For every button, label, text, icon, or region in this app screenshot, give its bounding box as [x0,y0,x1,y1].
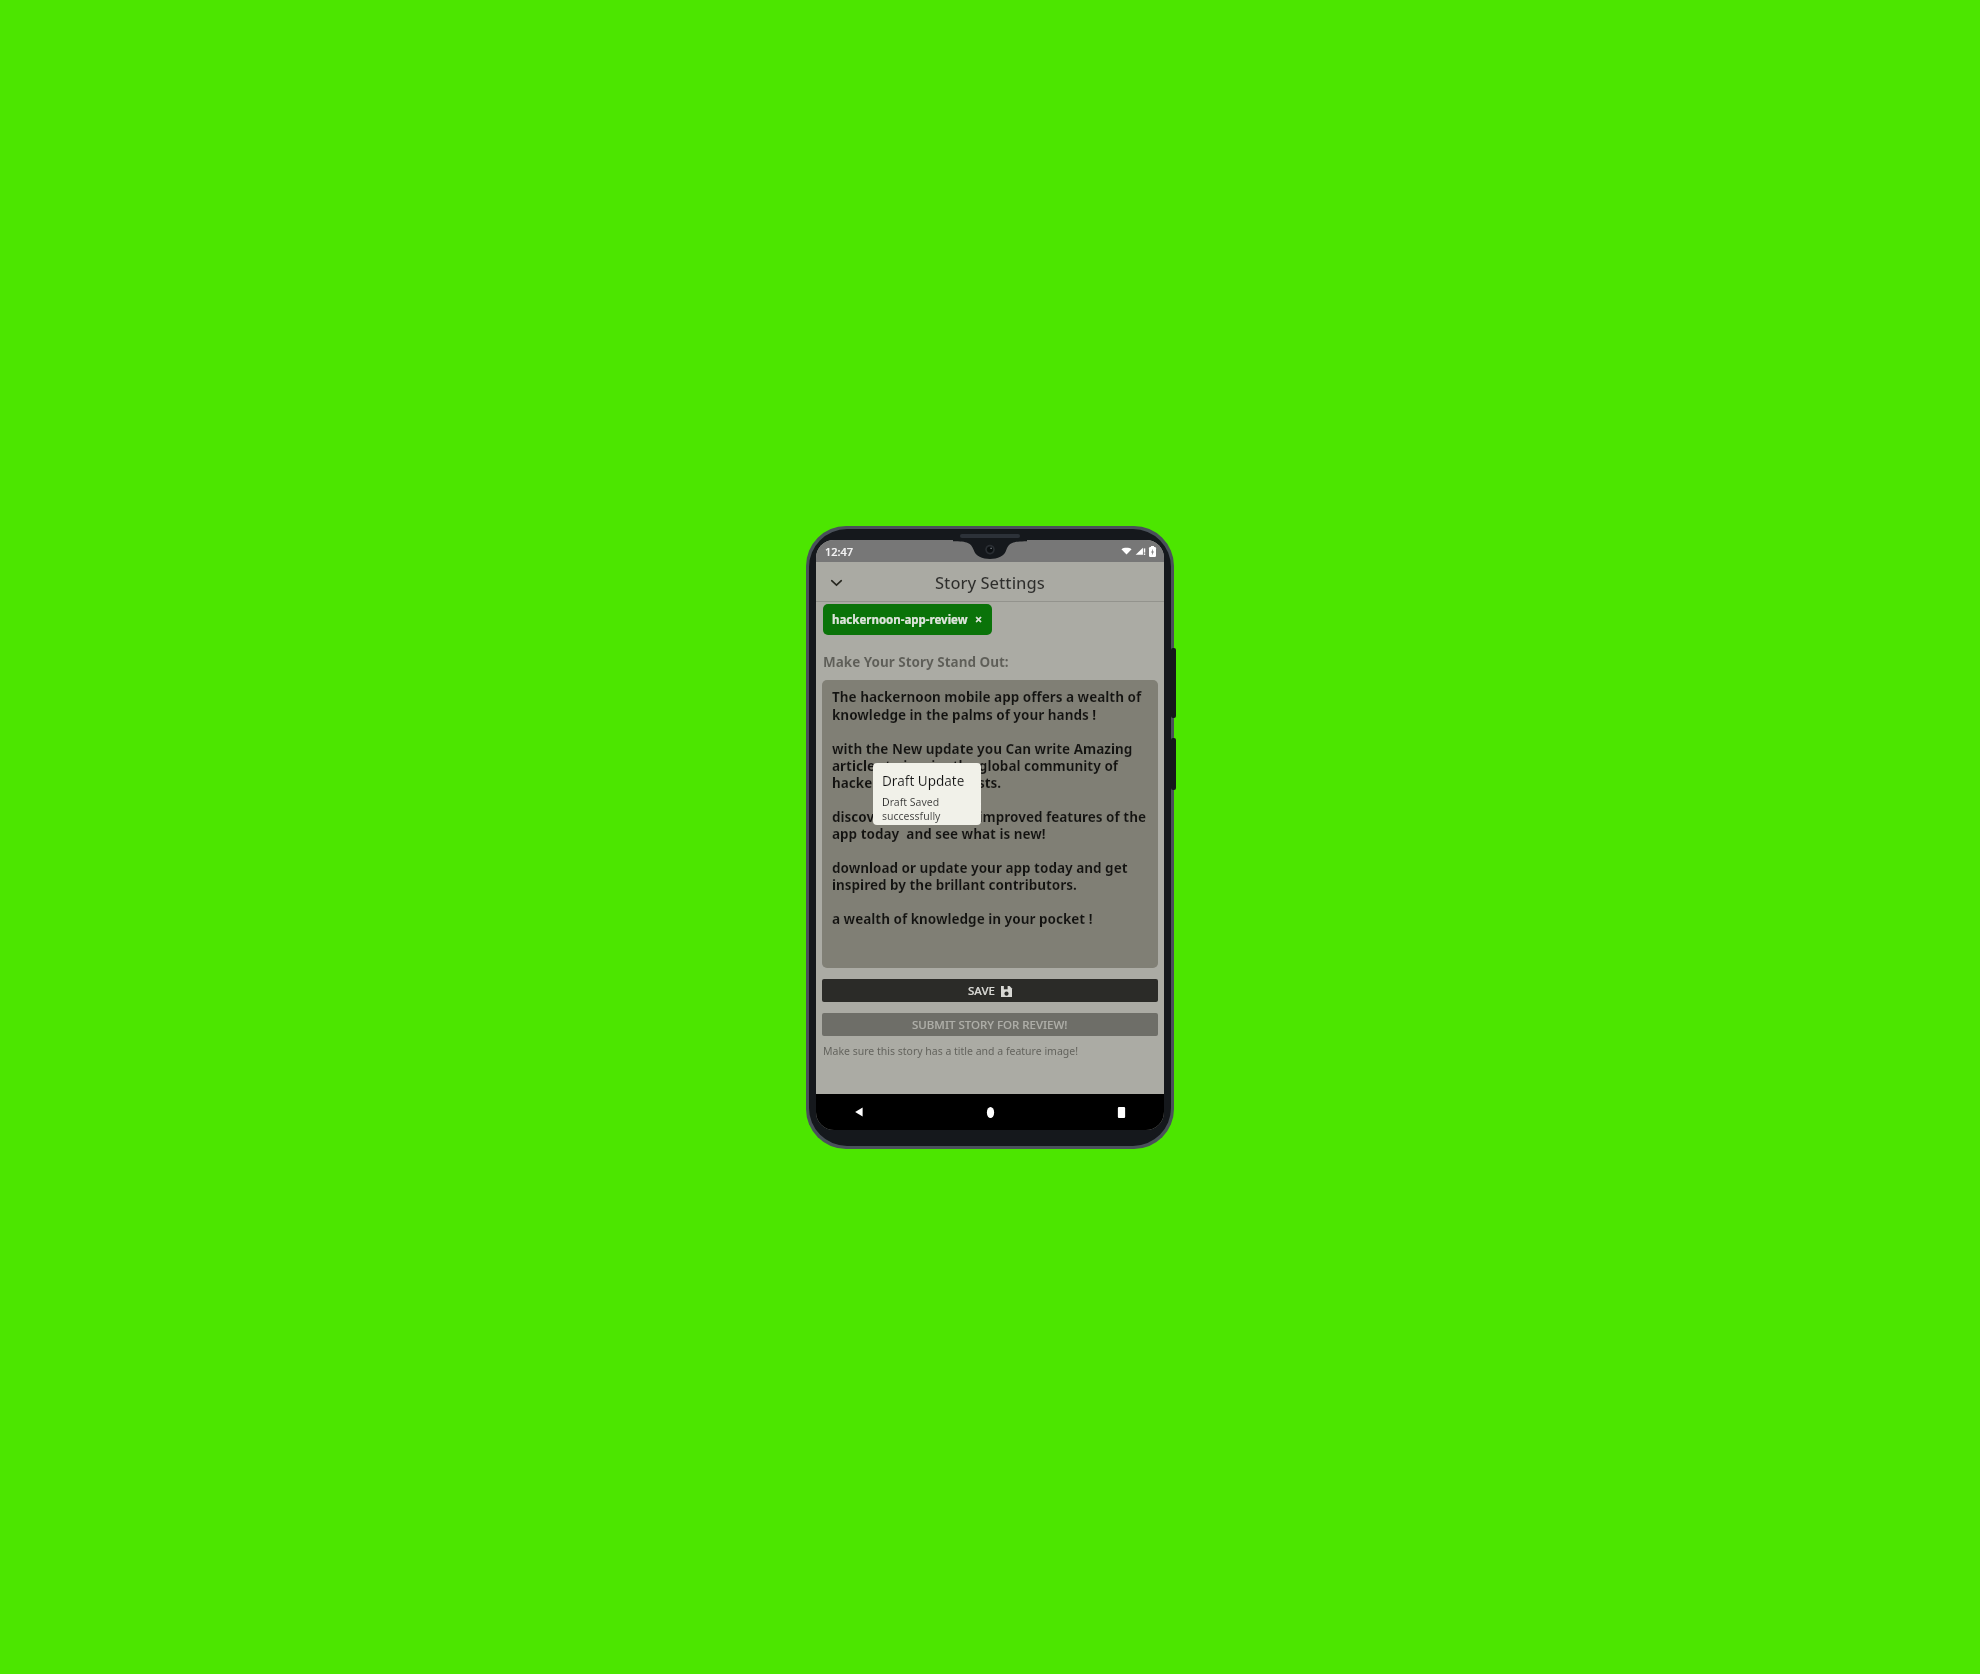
button[interactable]: Recents [1106,1097,1136,1127]
button[interactable]: hackernoon-app-review [823,604,992,635]
staticText: Draft Update [882,772,965,790]
button[interactable]: SAVE [822,979,1158,1002]
staticText: hackernoon-app-review [832,612,968,628]
button[interactable]: Collapse [819,565,853,599]
staticText: Make sure this story has a title and a f… [823,1044,1079,1058]
button[interactable]: Home [975,1097,1005,1127]
staticText: 12:47 [825,544,854,559]
button[interactable]: The hackernoon mobile app offers a wealt… [822,680,1158,968]
staticText: Story Settings [935,571,1045,593]
staticText: × [975,611,983,628]
staticText: The hackernoon mobile app offers a wealt… [832,688,1150,928]
staticText: SAVE [968,983,995,999]
staticText: Draft Saved successfully [882,795,981,823]
button[interactable]: Back [844,1097,874,1127]
staticText: SUBMIT STORY FOR REVIEW! [912,1017,1068,1033]
button[interactable]: OK [945,823,981,825]
staticText: Make Your Story Stand Out: [823,653,1009,671]
button[interactable]: SUBMIT STORY FOR REVIEW! [822,1013,1158,1036]
